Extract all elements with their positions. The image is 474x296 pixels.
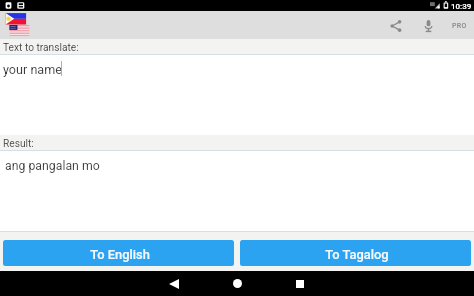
staticText: Text to translate:	[3, 42, 79, 54]
staticText: To English	[90, 247, 150, 262]
button[interactable]: PRO	[448, 16, 471, 36]
button[interactable]: To English	[3, 240, 234, 266]
button[interactable]: Recents	[283, 271, 317, 296]
staticText: Result:	[3, 138, 34, 150]
staticText: 10:39	[451, 2, 472, 11]
button[interactable]: Share	[384, 14, 408, 38]
staticText: ang pangalan mo	[5, 159, 100, 173]
staticText: To Tagalog	[325, 247, 389, 262]
button[interactable]: Home	[220, 271, 254, 296]
staticText: PRO	[452, 22, 467, 30]
button[interactable]: Voice input	[416, 14, 440, 38]
button[interactable]: Back	[157, 271, 191, 296]
staticText: your name	[3, 62, 62, 77]
button[interactable]: To Tagalog	[240, 240, 471, 266]
